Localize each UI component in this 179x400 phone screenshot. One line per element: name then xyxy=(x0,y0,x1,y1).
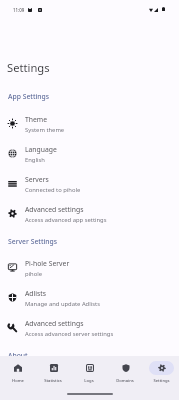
staticText: Home xyxy=(12,378,24,384)
button[interactable]: Logs xyxy=(71,356,107,400)
staticText: System theme xyxy=(25,126,65,134)
staticText: Manage and update Adlists xyxy=(25,300,100,308)
staticText: 11:09 xyxy=(13,7,25,13)
staticText: Access advanced server settings xyxy=(25,330,114,338)
staticText: App Settings xyxy=(8,92,50,101)
staticText: Theme xyxy=(25,115,48,124)
staticText: Statistics xyxy=(44,378,62,384)
staticText: Logs xyxy=(84,378,94,384)
staticText: Advanced settings xyxy=(25,319,84,328)
staticText: Pi-hole Server xyxy=(25,259,70,268)
button[interactable]: Servers xyxy=(0,168,179,198)
staticText: About xyxy=(8,351,28,360)
button[interactable]: Advanced settings xyxy=(0,312,179,342)
button[interactable]: Pi-hole Server xyxy=(0,252,179,282)
staticText: Adlists xyxy=(25,289,46,298)
button[interactable]: Home xyxy=(0,356,35,400)
staticText: Advanced settings xyxy=(25,205,84,214)
staticText: pihole xyxy=(25,270,43,278)
button[interactable]: Theme xyxy=(0,108,179,138)
button[interactable]: Advanced settings xyxy=(0,198,179,228)
staticText: English xyxy=(25,156,45,164)
button[interactable]: Language xyxy=(0,138,179,168)
staticText: Servers xyxy=(25,175,49,184)
staticText: Server Settings xyxy=(8,237,58,246)
staticText: Domains xyxy=(116,378,134,384)
button[interactable]: Statistics xyxy=(35,356,71,400)
staticText: Settings xyxy=(153,378,170,384)
staticText: Language xyxy=(25,145,57,154)
button[interactable]: Domains xyxy=(107,356,143,400)
button[interactable]: Adlists xyxy=(0,282,179,312)
button[interactable]: Settings xyxy=(143,356,179,400)
staticText: Access advanced app settings xyxy=(25,216,107,224)
staticText: Settings xyxy=(7,60,50,75)
staticText: Connected to pihole xyxy=(25,186,81,194)
